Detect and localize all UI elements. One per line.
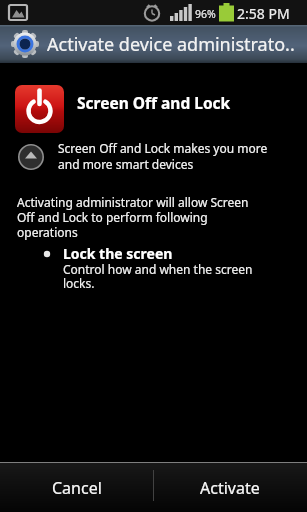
- button[interactable]: Cancel: [0, 463, 153, 512]
- staticText: Cancel: [52, 477, 102, 499]
- staticText: Control how and when the screen locks.: [63, 261, 253, 292]
- staticText: Activating administrator will allow Scre…: [17, 194, 249, 240]
- staticText: Screen Off and Lock: [77, 92, 231, 113]
- button[interactable]: Activate device administrato..: [0, 25, 307, 63]
- staticText: Activate device administrato..: [47, 32, 295, 57]
- staticText: Activate: [200, 477, 260, 499]
- staticText: Lock the screen: [63, 244, 173, 263]
- staticText: 2:58 PM: [237, 4, 290, 23]
- button[interactable]: Screen Off and Lock makes you more and m…: [0, 135, 307, 180]
- staticText: 96%: [195, 7, 216, 21]
- staticText: Screen Off and Lock makes you more and m…: [58, 140, 268, 172]
- button[interactable]: Activate: [153, 463, 307, 512]
